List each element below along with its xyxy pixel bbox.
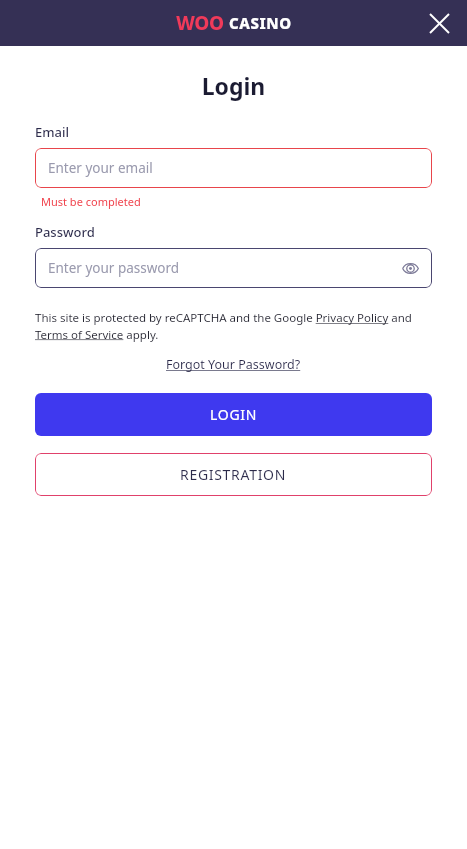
button[interactable]: Forgot Your Password? <box>166 356 301 373</box>
button[interactable]: LOGIN <box>35 393 432 436</box>
button[interactable]: Show password <box>396 254 424 282</box>
staticText: Forgot Your Password? <box>166 356 301 373</box>
staticText: Login <box>35 70 432 101</box>
button[interactable]: Enter your password <box>35 248 432 288</box>
staticText: Must be completed <box>41 194 141 209</box>
button[interactable]: This site is protected by reCAPTCHA and … <box>35 310 432 342</box>
staticText: Password <box>35 223 95 241</box>
staticText: REGISTRATION <box>180 465 287 484</box>
staticText: LOGIN <box>210 405 258 424</box>
staticText: Email <box>35 123 70 141</box>
staticText: CASINO <box>229 13 292 33</box>
button[interactable]: REGISTRATION <box>35 453 432 496</box>
button[interactable]: Close <box>422 6 456 40</box>
staticText: Enter your password <box>48 259 180 277</box>
staticText: Enter your email <box>48 159 153 177</box>
button[interactable]: Enter your email <box>35 148 432 188</box>
staticText: WOO <box>176 10 224 36</box>
